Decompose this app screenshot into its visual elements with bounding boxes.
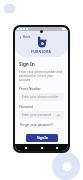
button[interactable]: Forgot your password?: [19, 122, 54, 128]
staticText: Phone Number: [19, 87, 41, 91]
button[interactable]: Sign In: [26, 134, 58, 142]
button[interactable]: Enter your password: [19, 111, 64, 119]
staticText: Forgot your password?: [20, 123, 53, 127]
staticText: Enter your phone number and password to …: [19, 70, 64, 82]
button[interactable]: Back: [53, 145, 61, 151]
staticText: Enter your phone number: [22, 95, 59, 99]
button[interactable]: Home: [38, 145, 46, 151]
staticText: Enter your password: [22, 113, 52, 117]
button[interactable]: Back: [18, 34, 32, 40]
button[interactable]: Recents: [22, 145, 30, 151]
staticText: Sign In: [37, 136, 48, 140]
staticText: Sign In: [19, 61, 35, 67]
staticText: Back: [23, 35, 31, 39]
staticText: FURNIDRA: [31, 49, 52, 54]
button[interactable]: Enter your phone number: [19, 93, 64, 101]
staticText: Password: [19, 105, 33, 109]
button[interactable]: Show password: [56, 113, 61, 118]
